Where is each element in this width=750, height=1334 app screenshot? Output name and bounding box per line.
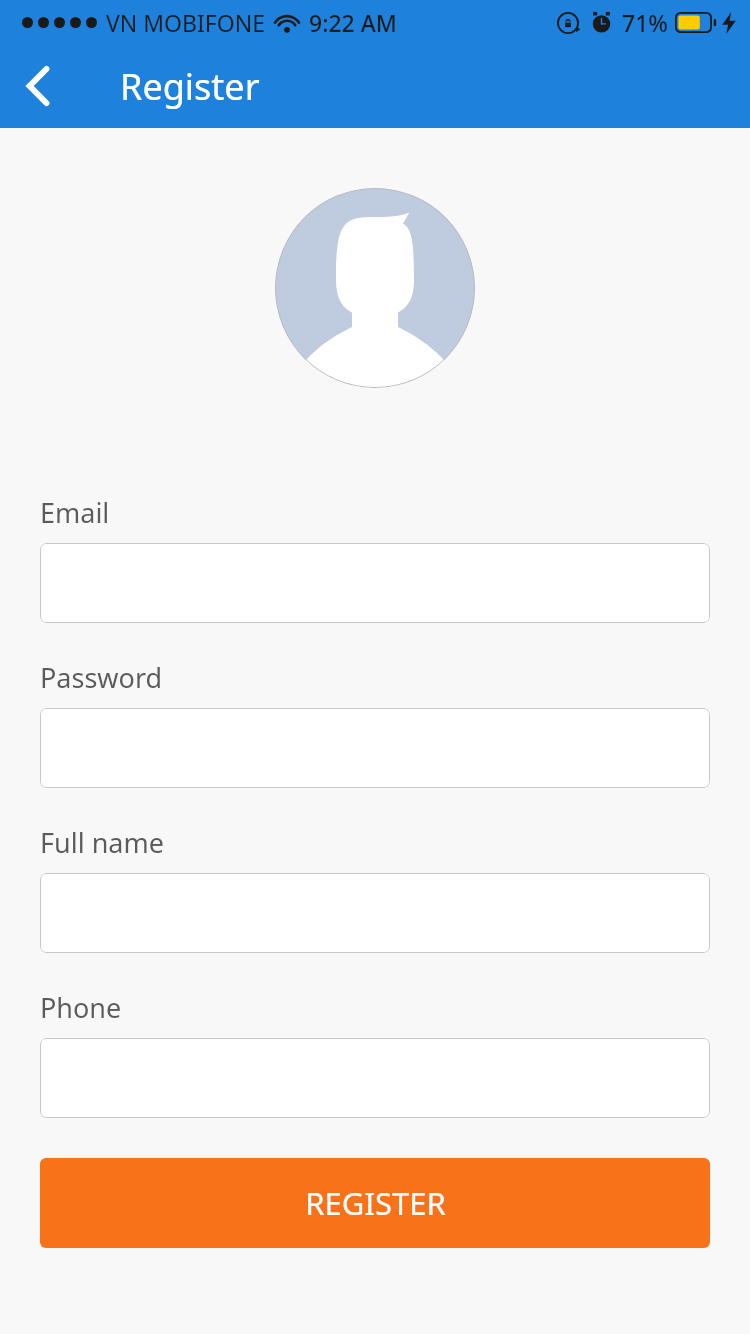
button[interactable]: Phone (40, 1038, 710, 1118)
button[interactable]: Full name (40, 873, 710, 953)
button[interactable]: Back (0, 48, 76, 124)
button[interactable]: Password (40, 708, 710, 788)
staticText: Password (40, 659, 163, 696)
staticText: 71% (622, 7, 668, 38)
button[interactable]: REGISTER (40, 1158, 710, 1248)
staticText: Full name (40, 824, 164, 861)
staticText: REGISTER (305, 1182, 446, 1224)
button[interactable]: Email (40, 543, 710, 623)
button[interactable]: Profile photo (275, 188, 475, 388)
staticText: VN MOBIFONE (106, 7, 265, 38)
staticText: 9:22 AM (309, 7, 397, 38)
staticText: Phone (40, 989, 122, 1026)
staticText: Email (40, 494, 110, 531)
staticText: Register (120, 62, 260, 111)
